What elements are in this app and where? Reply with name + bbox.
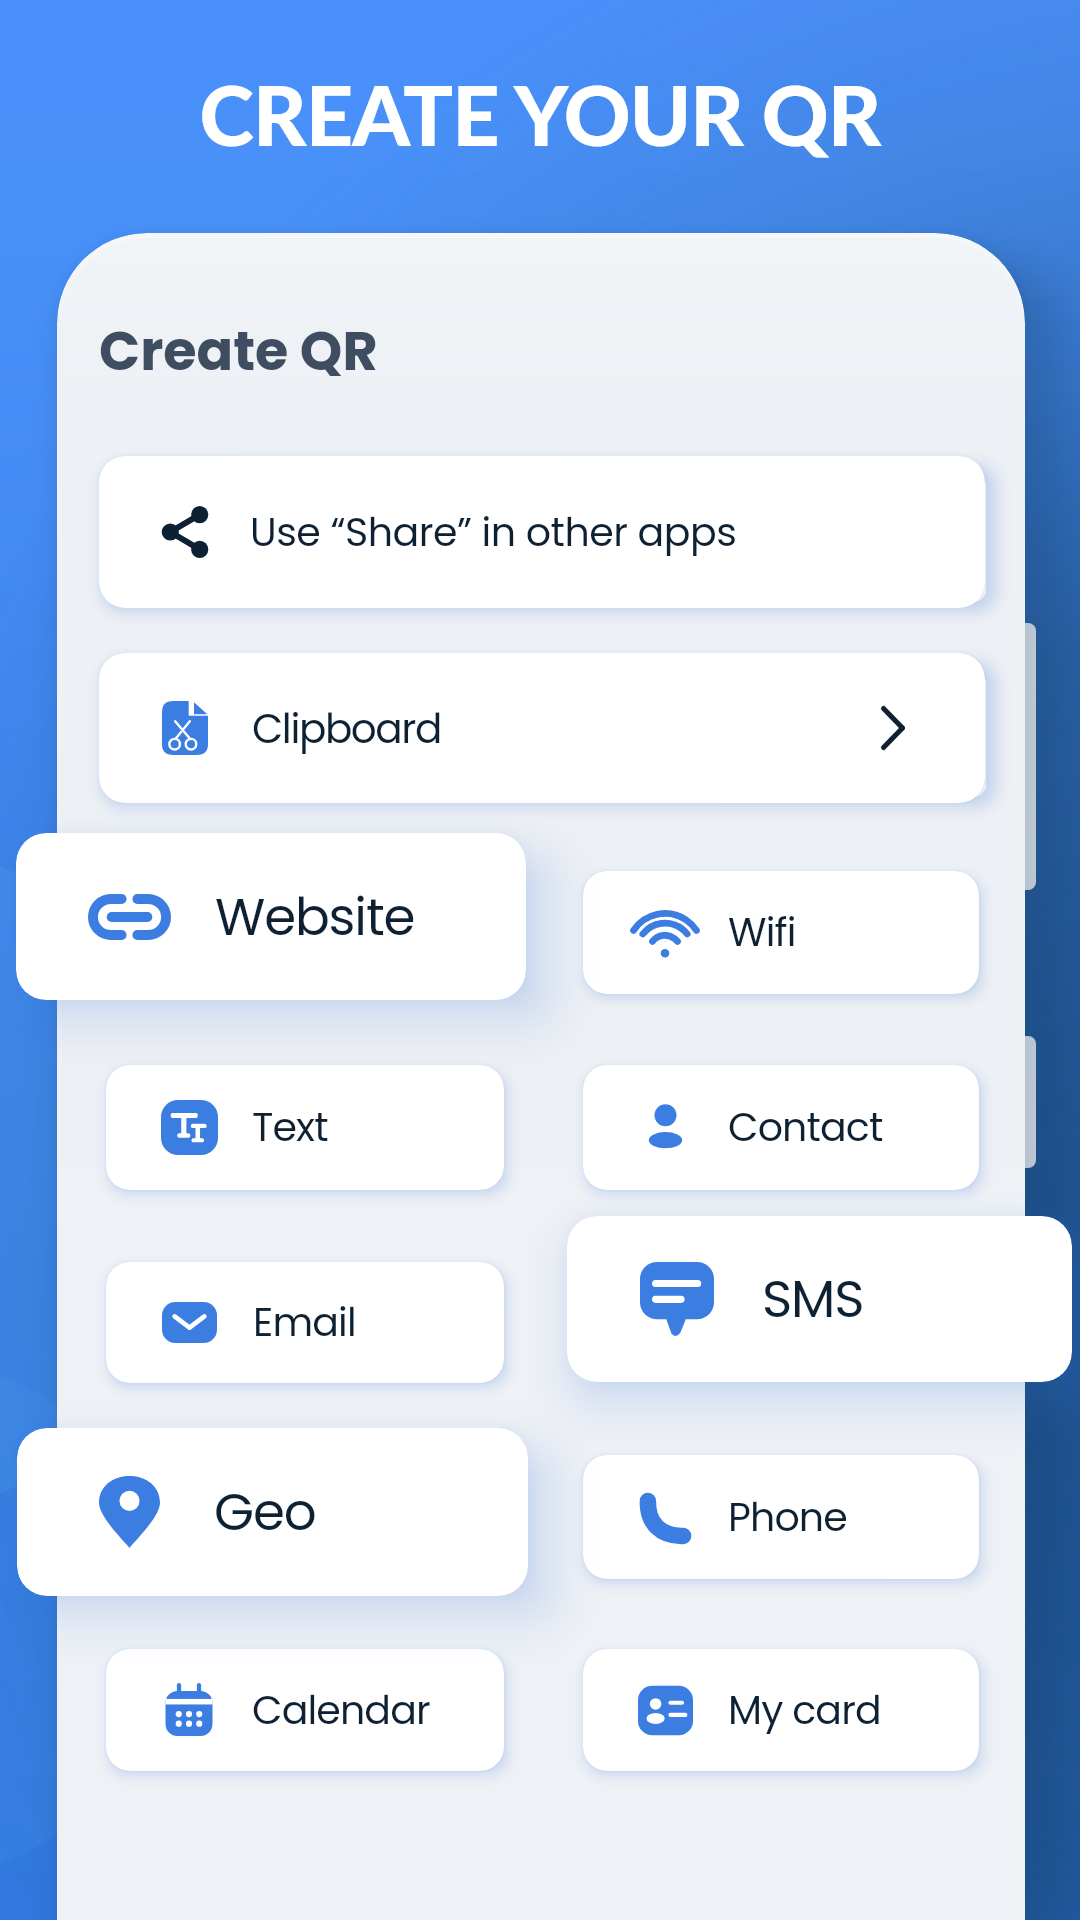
staticText: SMS bbox=[762, 1263, 864, 1335]
staticText: Wifi bbox=[728, 905, 796, 960]
staticText: Use “Share” in other apps bbox=[250, 505, 737, 560]
button[interactable]: Contact bbox=[583, 1065, 979, 1190]
button[interactable]: Phone bbox=[583, 1455, 979, 1579]
other: Open clipboard bbox=[881, 706, 905, 750]
button[interactable]: SMS bbox=[567, 1216, 1072, 1382]
staticText: Calendar bbox=[252, 1683, 430, 1738]
button[interactable]: My card bbox=[583, 1649, 979, 1771]
button[interactable]: Text bbox=[106, 1065, 504, 1190]
staticText: Email bbox=[253, 1295, 356, 1350]
staticText: Text bbox=[252, 1100, 328, 1155]
button[interactable]: Geo bbox=[17, 1428, 528, 1596]
staticText: Website bbox=[215, 881, 415, 953]
staticText: Clipboard bbox=[252, 700, 441, 757]
staticText: Phone bbox=[728, 1490, 847, 1545]
button[interactable]: Email bbox=[106, 1262, 504, 1383]
staticText: Contact bbox=[728, 1100, 883, 1155]
staticText: My card bbox=[728, 1683, 881, 1738]
button[interactable]: Wifi bbox=[583, 871, 979, 994]
button[interactable]: Website bbox=[16, 833, 526, 1000]
button[interactable]: Use “Share” in other apps bbox=[99, 456, 985, 608]
staticText: CREATE YOUR QR bbox=[0, 65, 1080, 164]
button[interactable]: Calendar bbox=[106, 1649, 504, 1771]
button[interactable]: Clipboard bbox=[99, 653, 985, 803]
staticText: Create QR bbox=[99, 313, 378, 389]
staticText: Geo bbox=[214, 1476, 316, 1548]
